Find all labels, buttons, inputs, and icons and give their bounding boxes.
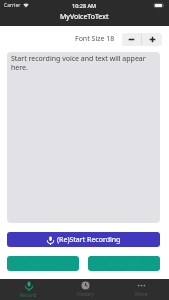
button[interactable]: Decrease font size: [122, 33, 141, 46]
staticText: (Re)Start Recording: [57, 235, 121, 245]
button[interactable]: Start recording voice and text will appe…: [7, 52, 160, 223]
staticText: Record: [20, 292, 37, 299]
button[interactable]: Share Text: [88, 256, 160, 271]
staticText: MyVoiceToText: [60, 12, 109, 22]
staticText: History: [77, 291, 94, 298]
staticText: Carrier: [4, 2, 21, 9]
staticText: More: [135, 291, 148, 298]
button[interactable]: Record: [0, 279, 57, 300]
staticText: Font Size 18: [75, 34, 115, 44]
button[interactable]: History: [57, 279, 113, 300]
button[interactable]: Increase font size: [142, 33, 162, 46]
button[interactable]: (Re)Start Recording: [7, 232, 160, 247]
button[interactable]: More: [113, 279, 169, 300]
button[interactable]: Copy Text: [7, 256, 79, 271]
staticText: 10:28 AM: [72, 2, 97, 9]
staticText: Start recording voice and text will appe…: [11, 54, 155, 72]
